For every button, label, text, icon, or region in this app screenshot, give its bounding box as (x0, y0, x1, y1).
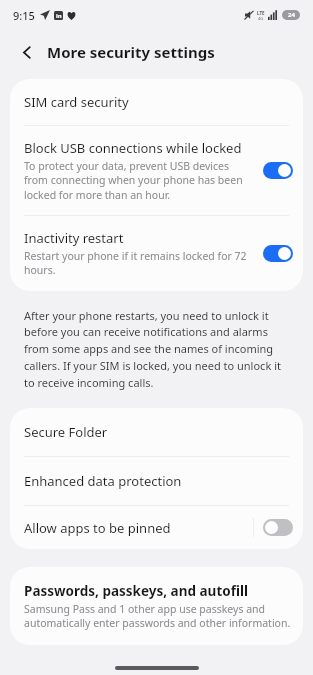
staticText: Inactivity restart (24, 229, 124, 247)
staticText: Allow apps to be pinned (24, 519, 171, 537)
staticText: More security settings (47, 42, 215, 62)
staticText: 24 (288, 11, 295, 19)
staticText: Enhanced data protection (24, 472, 182, 490)
staticText: 4G (258, 16, 264, 21)
button[interactable]: Switch on (263, 245, 293, 262)
staticText: SIM card security (24, 93, 129, 111)
button[interactable]: Secure Folder (10, 408, 303, 456)
button[interactable]: Enhanced data protection (10, 457, 303, 505)
staticText: Passwords, passkeys, and autofill (24, 582, 248, 600)
staticText: To protect your data, prevent USB device… (24, 159, 255, 202)
button[interactable]: Inactivity restart (10, 216, 303, 291)
button[interactable]: Switch off (263, 519, 293, 536)
staticText: in (56, 12, 62, 20)
staticText: Samsung Pass and 1 other app use passkey… (24, 602, 291, 630)
button[interactable]: SIM card security (10, 79, 303, 125)
button[interactable]: Back (14, 39, 40, 65)
staticText: Block USB connections while locked (24, 139, 242, 157)
button[interactable]: Passwords, passkeys, and autofill (10, 567, 303, 645)
staticText: After your phone restarts, you need to u… (24, 308, 291, 390)
button[interactable]: Switch on (263, 162, 293, 179)
button[interactable]: Allow apps to be pinned (10, 506, 303, 549)
staticText: LTE (257, 10, 265, 16)
staticText: 9:15 (13, 8, 35, 23)
button[interactable]: Block USB connections while locked (10, 126, 303, 215)
staticText: Restart your phone if it remains locked … (24, 249, 255, 277)
staticText: Secure Folder (24, 423, 108, 441)
